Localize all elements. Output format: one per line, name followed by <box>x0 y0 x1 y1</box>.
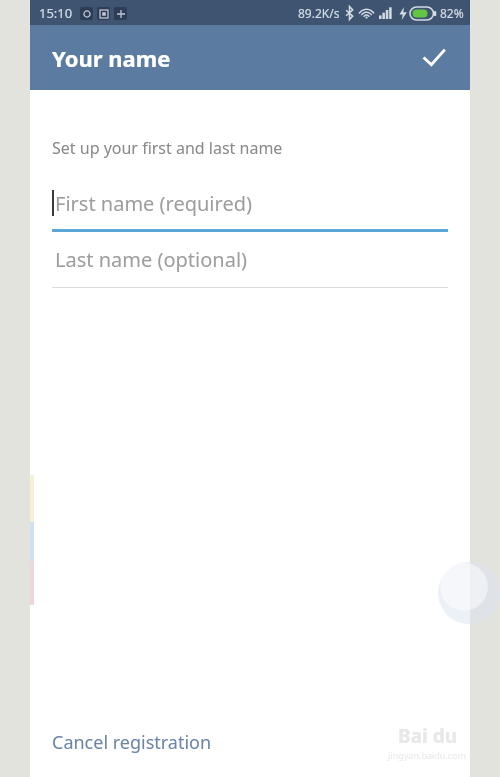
staticText: 82% <box>440 5 464 21</box>
staticText: Your name <box>52 43 171 73</box>
staticText: Bai du <box>398 723 457 749</box>
staticText: Cancel registration <box>52 730 212 755</box>
staticText: Last name (optional) <box>55 246 248 273</box>
staticText: First name (required) <box>55 190 252 217</box>
button[interactable]: First name (required) <box>52 182 448 232</box>
button[interactable]: Last name (optional) <box>52 238 448 288</box>
staticText: jingyan.baidu.com <box>388 749 466 761</box>
staticText: 89.2K/s <box>298 5 340 21</box>
button[interactable]: Confirm name <box>410 34 458 82</box>
staticText: Set up your first and last name <box>52 137 283 159</box>
staticText: 15:10 <box>39 4 73 22</box>
button[interactable]: Cancel registration <box>40 722 224 763</box>
